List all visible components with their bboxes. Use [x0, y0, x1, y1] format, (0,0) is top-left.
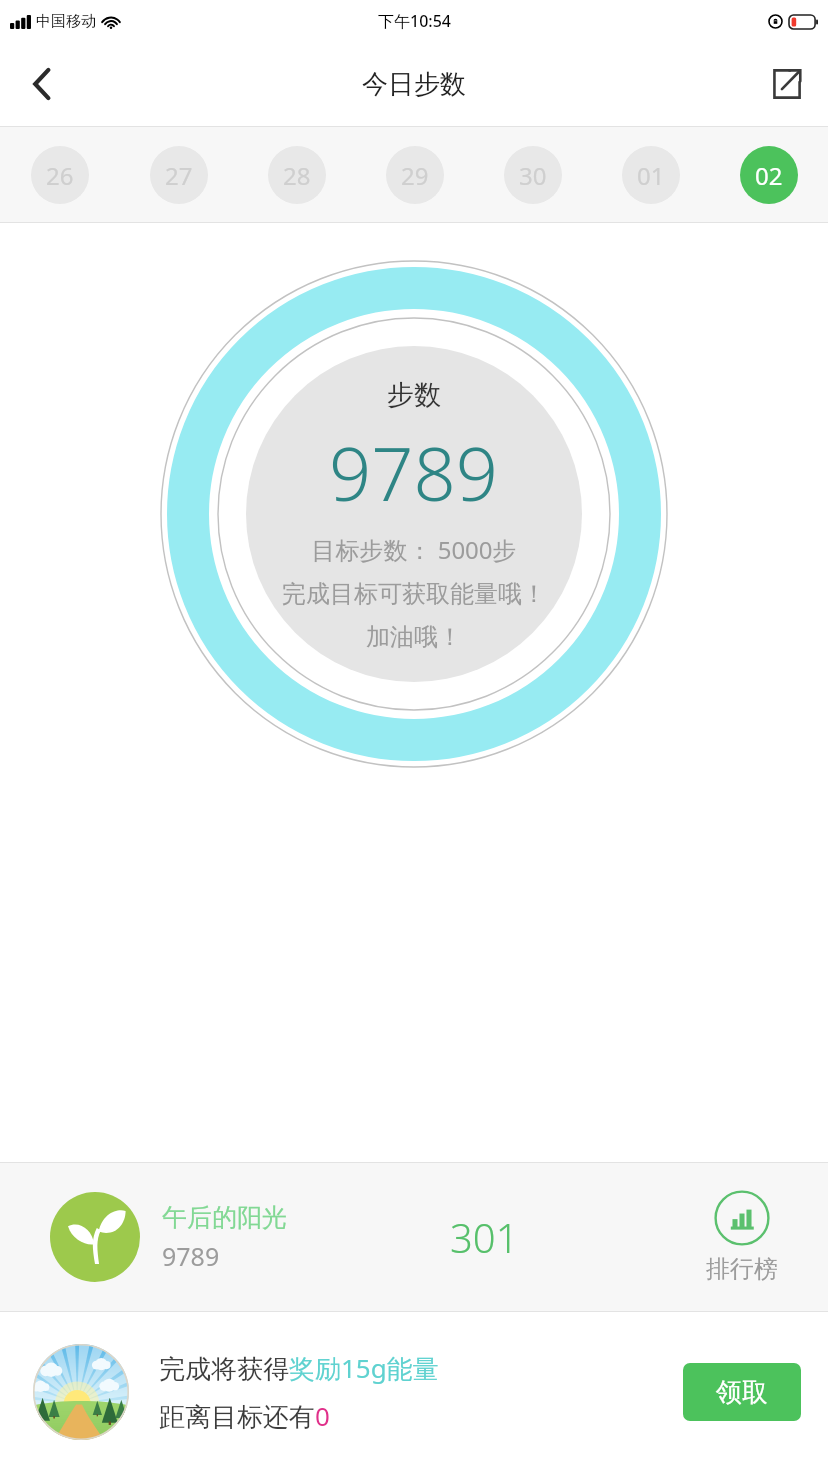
- button[interactable]: Share: [758, 56, 814, 112]
- staticText: 27: [165, 159, 193, 192]
- button[interactable]: 28: [238, 127, 356, 222]
- button[interactable]: 午后的阳光: [0, 1163, 828, 1311]
- staticText: 目标步数： 5000步: [311, 533, 517, 566]
- button[interactable]: 02: [710, 127, 828, 222]
- staticText: 01: [637, 159, 665, 192]
- staticText: 步数: [387, 378, 441, 412]
- button[interactable]: 领取: [683, 1363, 801, 1421]
- staticText: 29: [401, 159, 429, 192]
- button[interactable]: 30: [474, 127, 592, 222]
- staticText: 下午10:54: [378, 10, 451, 32]
- button[interactable]: 27: [119, 127, 238, 222]
- staticText: 今日步数: [362, 68, 466, 101]
- staticText: 301: [450, 1210, 519, 1264]
- staticText: 30: [519, 159, 547, 192]
- staticText: 26: [46, 159, 74, 192]
- button[interactable]: 01: [592, 127, 710, 222]
- staticText: 9789: [329, 422, 499, 523]
- staticText: 9789: [162, 1239, 220, 1273]
- staticText: 中国移动: [36, 12, 96, 31]
- staticText: 完成将获得奖励15g能量: [159, 1350, 439, 1386]
- staticText: 排行榜: [706, 1254, 778, 1284]
- button[interactable]: Back: [14, 56, 70, 112]
- button[interactable]: 26: [0, 127, 119, 222]
- staticText: 距离目标还有0: [159, 1398, 330, 1434]
- staticText: 加油哦！: [366, 622, 462, 652]
- staticText: 完成目标可获取能量哦！: [282, 579, 546, 609]
- button[interactable]: 29: [356, 127, 474, 222]
- staticText: 领取: [716, 1376, 768, 1409]
- button[interactable]: 排行榜: [706, 1190, 778, 1284]
- staticText: 午后的阳光: [162, 1202, 287, 1233]
- staticText: 02: [755, 159, 783, 192]
- staticText: 28: [283, 159, 311, 192]
